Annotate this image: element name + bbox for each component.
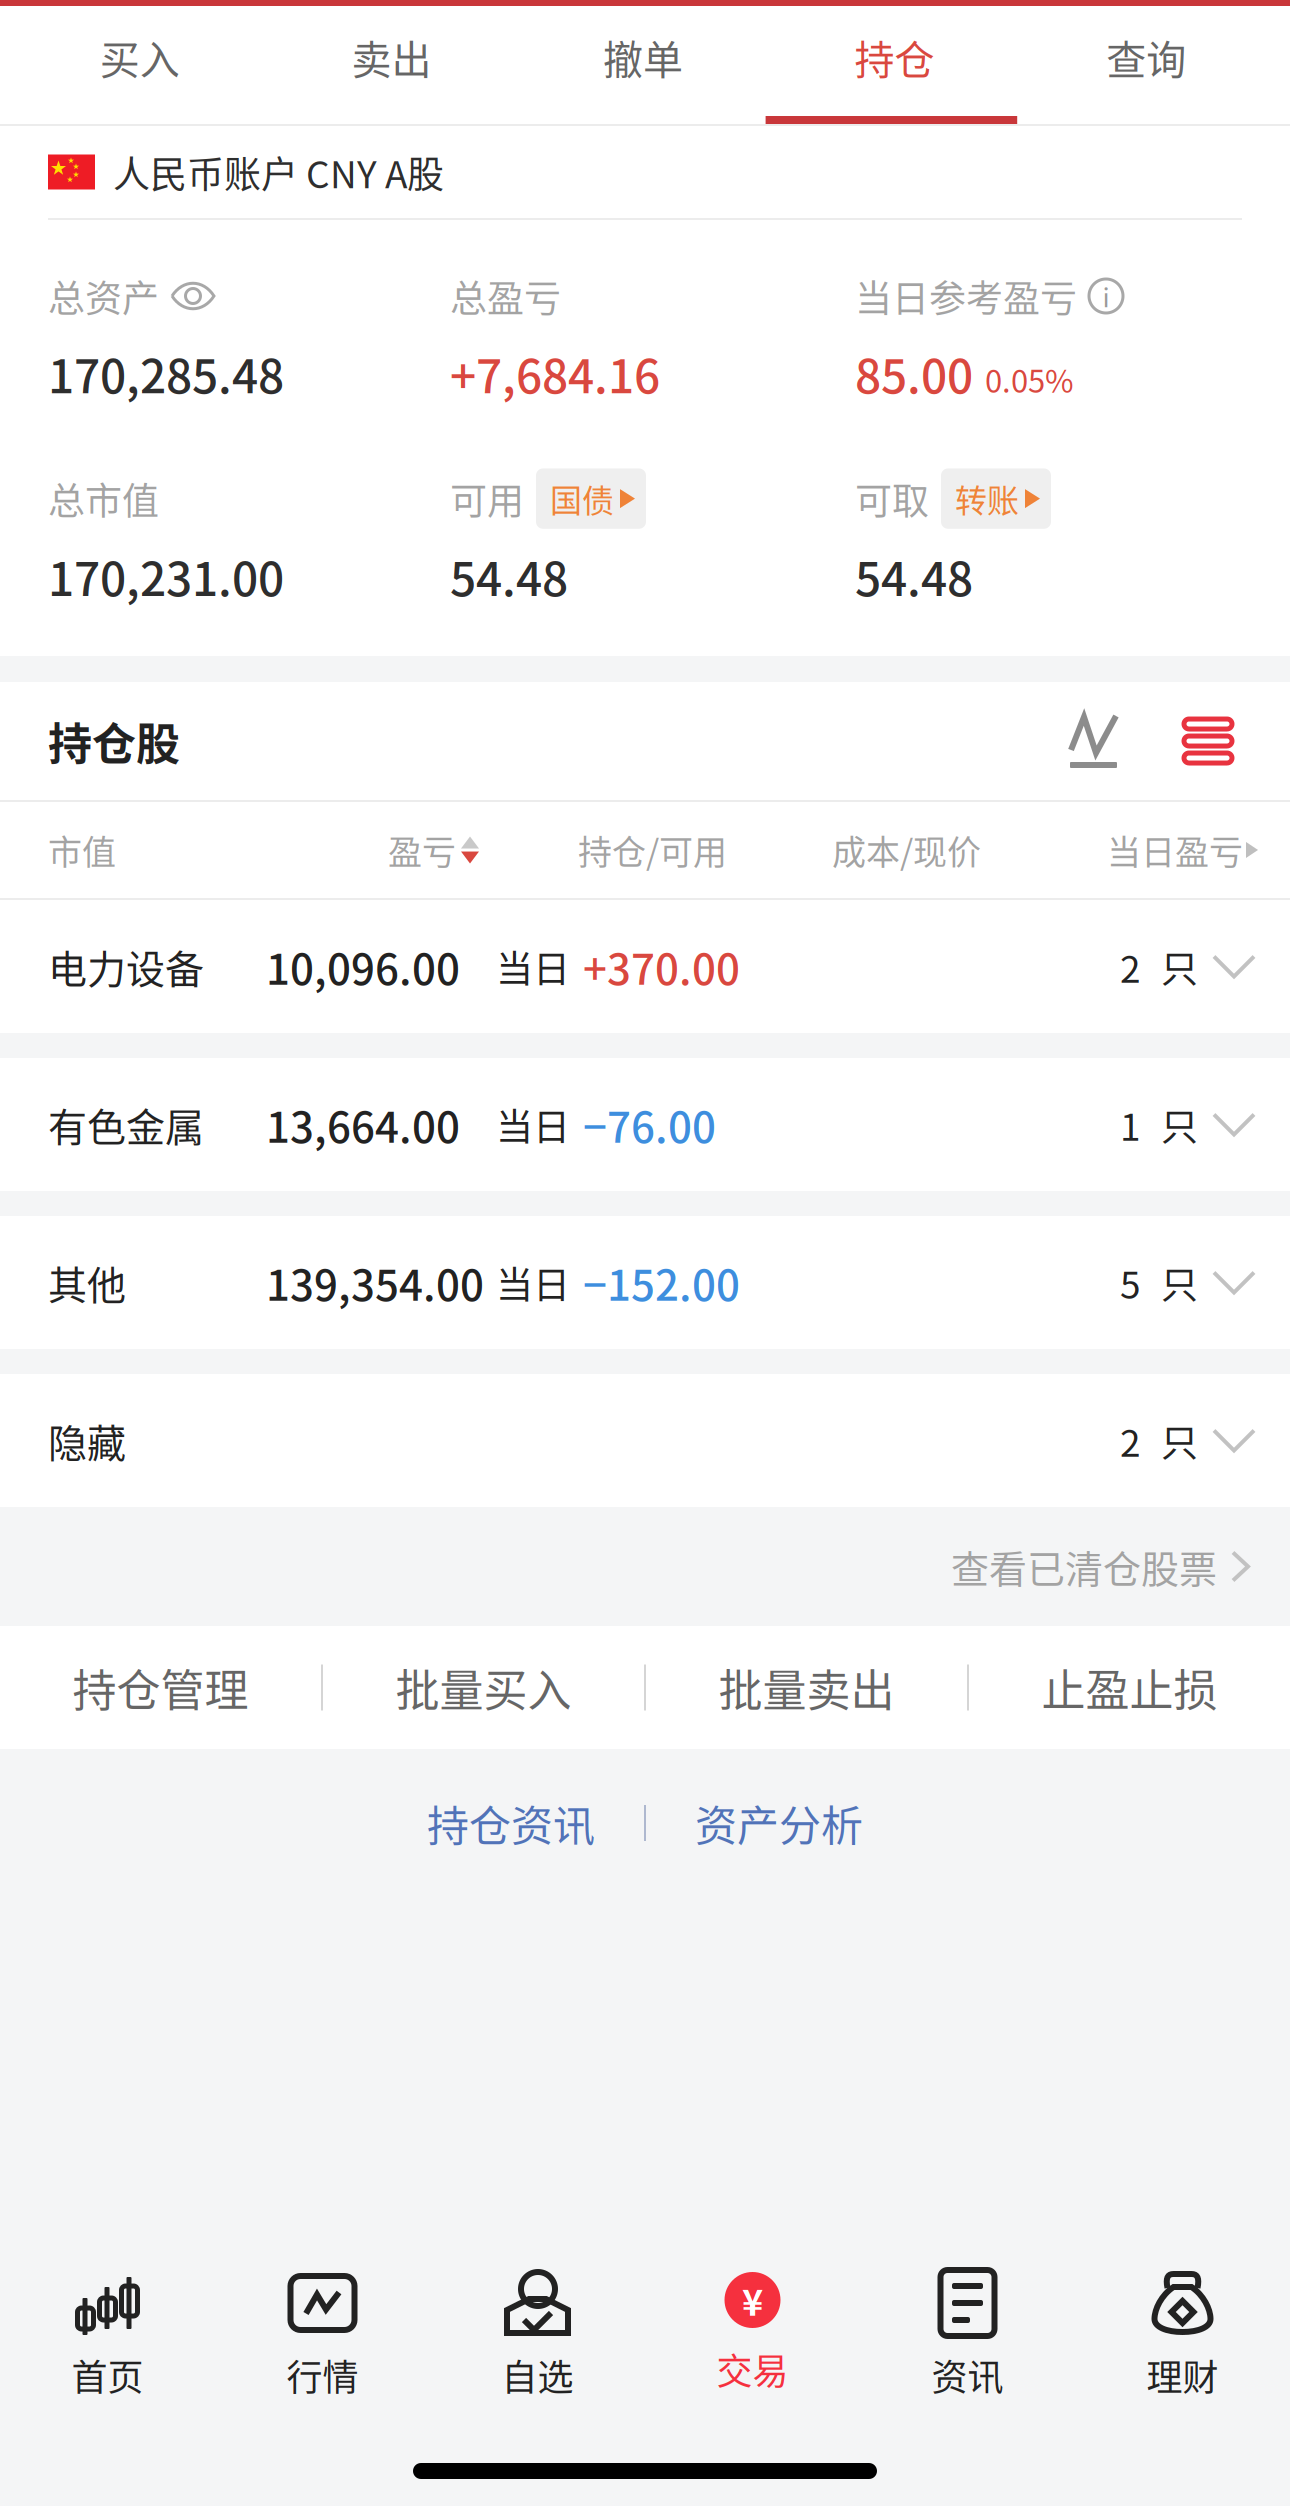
staticText: 总盈亏 <box>450 269 561 323</box>
staticText: 资讯 <box>931 2349 1003 2401</box>
staticText: 交易 <box>716 2343 788 2395</box>
staticText: 可取 <box>855 472 929 525</box>
staticText: 170,231.00 <box>48 543 284 609</box>
staticText: 理财 <box>1146 2349 1218 2401</box>
staticText: 转账 <box>955 475 1019 522</box>
staticText: 13,664.00 <box>266 1094 460 1155</box>
staticText: 撤单 <box>603 28 683 86</box>
staticText: −76.00 <box>583 1094 716 1155</box>
staticText: 54.48 <box>450 543 568 609</box>
button[interactable]: ¥ <box>645 2263 860 2430</box>
staticText: +370.00 <box>583 936 740 997</box>
button[interactable]: 首页 <box>0 2263 215 2430</box>
staticText: 有色金属 <box>48 1096 204 1153</box>
staticText: 5 <box>1120 1256 1141 1309</box>
staticText: 止盈止损 <box>1041 1656 1217 1719</box>
button[interactable]: 理财 <box>1075 2263 1290 2430</box>
staticText: 总资产 <box>48 269 159 323</box>
staticText: 只 <box>1161 1414 1198 1467</box>
button[interactable]: 转账 <box>941 468 1051 529</box>
staticText: 只 <box>1161 940 1198 993</box>
staticText: 电力设备 <box>48 938 204 995</box>
button[interactable]: 资产分析 <box>695 1793 863 1853</box>
staticText: 170,285.48 <box>48 340 284 407</box>
staticText: 查询 <box>1106 28 1186 86</box>
staticText: ¥ <box>742 2274 763 2326</box>
staticText: 当日 <box>496 940 570 993</box>
staticText: 人民币账户 CNY A股 <box>113 145 444 199</box>
staticText: 持仓 <box>855 28 935 86</box>
button[interactable]: 电力设备 <box>0 900 1290 1033</box>
staticText: 可用 <box>450 472 524 525</box>
button[interactable]: 撤单 <box>517 6 769 124</box>
staticText: 自选 <box>501 2349 573 2401</box>
button[interactable]: 查看已清仓股票 <box>0 1507 1290 1626</box>
staticText: 市值 <box>48 825 116 875</box>
button[interactable]: 批量卖出 <box>646 1626 967 1749</box>
staticText: i <box>1102 277 1109 315</box>
staticText: 持仓管理 <box>72 1656 248 1719</box>
staticText: 0.05% <box>985 357 1074 402</box>
staticText: 只 <box>1161 1256 1198 1309</box>
staticText: 首页 <box>71 2349 143 2401</box>
staticText: 行情 <box>286 2349 358 2401</box>
staticText: 当日参考盈亏 <box>855 269 1077 323</box>
button[interactable]: 列表视图 <box>1184 717 1232 765</box>
staticText: 卖出 <box>351 28 431 86</box>
button[interactable]: 批量买入 <box>323 1626 644 1749</box>
staticText: 只 <box>1161 1098 1198 1151</box>
button[interactable]: 有色金属 <box>0 1058 1290 1191</box>
staticText: 139,354.00 <box>266 1252 484 1313</box>
staticText: 当日 <box>496 1256 570 1309</box>
button[interactable]: 自选 <box>430 2263 645 2430</box>
staticText: 54.48 <box>855 543 973 609</box>
button[interactable]: 资讯 <box>860 2263 1075 2430</box>
staticText: −152.00 <box>583 1252 740 1313</box>
button[interactable]: 止盈止损 <box>969 1626 1290 1749</box>
staticText: 2 <box>1120 1414 1141 1467</box>
staticText: 持仓资讯 <box>427 1793 595 1853</box>
staticText: 国债 <box>550 475 614 522</box>
button[interactable]: 持仓管理 <box>0 1626 321 1749</box>
staticText: 成本/现价 <box>832 825 981 875</box>
button[interactable]: 其他 <box>0 1216 1290 1349</box>
staticText: 当日 <box>496 1098 570 1151</box>
staticText: 85.00 <box>855 340 973 407</box>
staticText: 持仓股 <box>48 709 180 773</box>
button[interactable]: 隐藏 <box>0 1374 1290 1507</box>
button[interactable]: 持仓资讯 <box>427 1793 595 1853</box>
staticText: 买入 <box>100 28 180 86</box>
staticText: 1 <box>1120 1098 1141 1151</box>
staticText: 当日盈亏 <box>1107 825 1243 875</box>
staticText: 2 <box>1120 940 1141 993</box>
staticText: 盈亏 <box>388 825 456 875</box>
staticText: 10,096.00 <box>266 936 460 997</box>
staticText: 总市值 <box>48 472 159 525</box>
button[interactable]: 国债 <box>536 468 646 529</box>
button[interactable]: 图表视图 <box>1069 714 1118 768</box>
staticText: 其他 <box>48 1254 126 1311</box>
staticText: 批量买入 <box>395 1656 571 1719</box>
button[interactable]: 持仓 <box>769 6 1020 124</box>
button[interactable]: 行情 <box>215 2263 430 2430</box>
button[interactable]: 查询 <box>1020 6 1272 124</box>
staticText: 持仓/可用 <box>578 825 727 875</box>
staticText: 批量卖出 <box>718 1656 894 1719</box>
staticText: +7,684.16 <box>450 340 660 407</box>
staticText: 隐藏 <box>48 1412 126 1469</box>
button[interactable]: 卖出 <box>266 6 517 124</box>
staticText: 资产分析 <box>695 1793 863 1853</box>
staticText: 查看已清仓股票 <box>951 1539 1217 1594</box>
button[interactable]: 买入 <box>14 6 266 124</box>
